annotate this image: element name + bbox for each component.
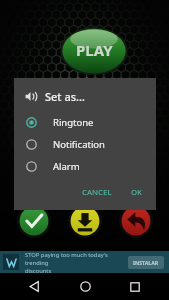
button[interactable]: Accept <box>16 203 52 239</box>
button[interactable]: Play <box>58 24 130 76</box>
button[interactable]: Download <box>67 203 103 239</box>
staticText: discounts <box>25 267 52 273</box>
staticText: Set as… <box>45 89 85 104</box>
button[interactable]: OK <box>125 183 149 202</box>
button[interactable]: CANCEL <box>76 183 118 202</box>
staticText: Alarm <box>53 160 80 173</box>
staticText: Notification <box>53 138 105 151</box>
button[interactable]: Back <box>118 203 154 239</box>
staticText: STOP paying too much today's trending <box>25 251 128 267</box>
staticText: INSTALAR <box>133 259 159 266</box>
staticText: PLAY <box>76 40 113 60</box>
button[interactable]: Home <box>69 273 101 300</box>
button[interactable]: INSTALAR <box>128 256 164 269</box>
button[interactable]: Alarm <box>14 155 156 177</box>
button[interactable]: Ringtone <box>14 111 156 133</box>
button[interactable]: Back <box>18 273 50 300</box>
staticText: CANCEL <box>82 187 112 198</box>
button[interactable]: Recents <box>119 273 151 300</box>
staticText: Ringtone <box>53 116 94 129</box>
staticText: OK <box>131 187 143 198</box>
button[interactable]: Notification <box>14 133 156 155</box>
button[interactable]: STOP paying too much today's trending <box>0 251 169 273</box>
